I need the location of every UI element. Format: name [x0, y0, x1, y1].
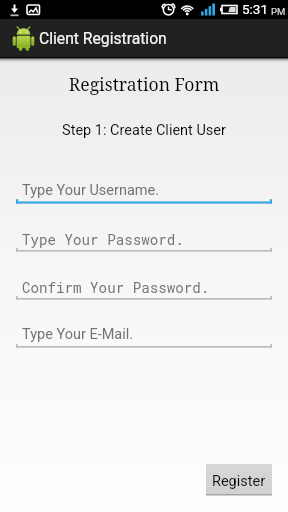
- button[interactable]: Type Your Password.: [0, 220, 288, 262]
- button[interactable]: Confirm Your Password.: [0, 268, 288, 310]
- staticText: Confirm Your Password.: [22, 278, 210, 297]
- button[interactable]: Type Your E-Mail.: [0, 316, 288, 358]
- staticText: PM: [271, 6, 286, 17]
- staticText: Registration Form: [0, 72, 288, 96]
- button[interactable]: Type Your Username.: [0, 172, 288, 214]
- staticText: Type Your Username.: [22, 182, 160, 199]
- other: App icon: [0, 19, 288, 57]
- staticText: Type Your E-Mail.: [22, 326, 134, 343]
- staticText: Type Your Password.: [22, 230, 184, 249]
- staticText: Client Registration: [39, 29, 167, 47]
- staticText: 5:31: [242, 1, 269, 17]
- staticText: Register: [212, 473, 266, 490]
- button[interactable]: Register: [206, 464, 272, 496]
- staticText: Step 1: Create Client User: [0, 122, 288, 139]
